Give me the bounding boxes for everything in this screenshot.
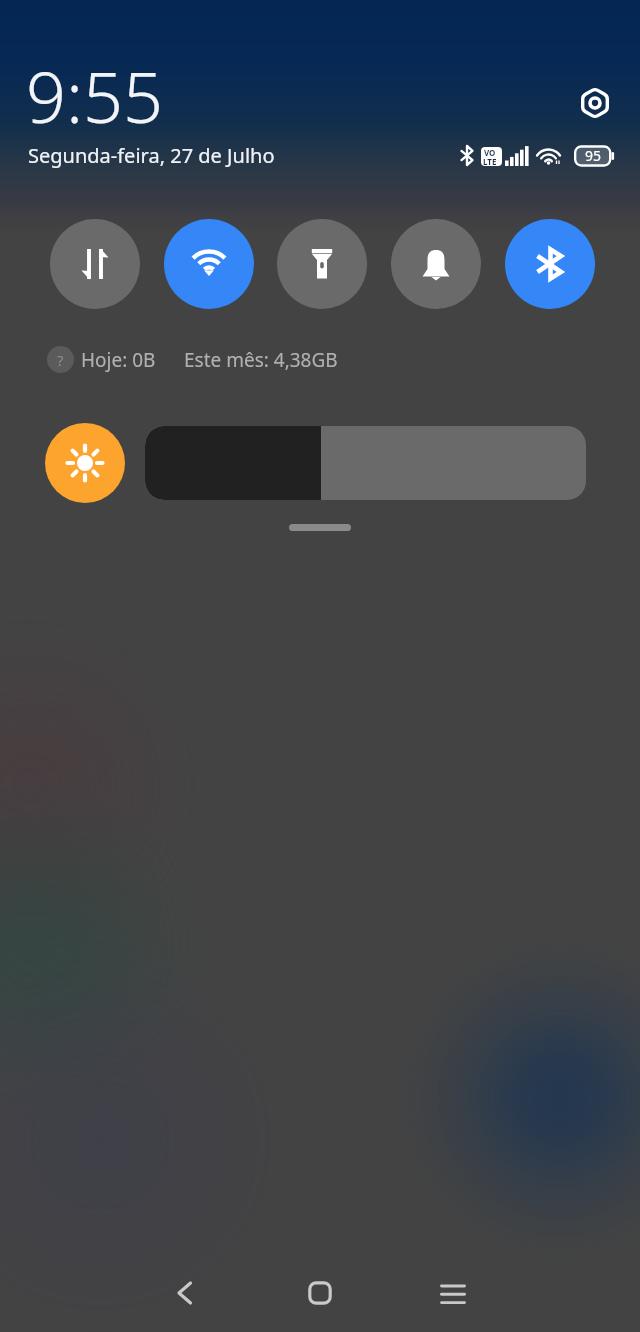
button[interactable]: Quick setting toggle [164, 219, 254, 309]
staticText: Hoje: 0B [81, 347, 156, 373]
button[interactable]: Brightness [145, 426, 586, 500]
staticText: LTE [483, 156, 497, 166]
button[interactable]: Home [280, 1253, 360, 1332]
button[interactable]: Quick setting toggle [277, 219, 367, 309]
staticText: Este mês: 4,38GB [184, 347, 338, 373]
staticText: Segunda-feira, 27 de Julho [28, 142, 275, 169]
button[interactable]: Quick setting toggle [391, 219, 481, 309]
staticText: VO [484, 147, 496, 158]
staticText: 95 [585, 146, 602, 165]
button[interactable]: Quick setting toggle [50, 219, 140, 309]
button[interactable]: Recents [412, 1253, 492, 1332]
button[interactable]: Data usage info [47, 346, 74, 373]
button[interactable]: Auto brightness [45, 423, 125, 503]
button[interactable]: Settings [571, 79, 619, 127]
button[interactable]: Expand quick settings [289, 524, 351, 531]
staticText: 9:55 [26, 48, 163, 143]
button[interactable]: Back [145, 1253, 225, 1332]
staticText: ? [57, 350, 64, 370]
button[interactable]: Quick setting toggle [505, 219, 595, 309]
